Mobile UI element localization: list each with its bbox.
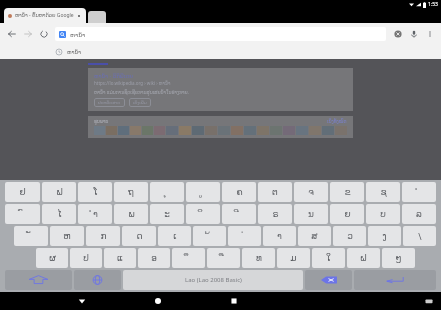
button[interactable]: ຫານ້ຳ [0,45,441,59]
button[interactable]: \ [403,226,436,246]
button[interactable]: Clear [390,26,406,42]
button[interactable]: ຍ [330,204,364,224]
staticText: ໂ [93,187,98,197]
button[interactable]: ່ [228,226,261,246]
button[interactable] [88,11,106,23]
button[interactable]: ຢ [5,182,40,202]
button[interactable]: ໃ [312,248,345,268]
staticText: ຫ [63,231,71,241]
staticText: Lao (Lao 2008 Basic) [185,276,242,284]
button[interactable]: Back [4,26,20,42]
button[interactable]: Backspace [305,270,352,290]
staticText: 1:53 [428,1,438,8]
button[interactable]: ູ [186,182,220,202]
button[interactable]: ປ [70,248,102,268]
button[interactable]: ຫານ້ຳ - ວິກິພີເດຍ [94,72,347,107]
button[interactable]: Shift [5,270,72,290]
button[interactable]: ໂ [78,182,112,202]
button[interactable]: ຝ [347,248,380,268]
button[interactable]: ໄ [42,204,76,224]
button[interactable]: Change keyboard [74,270,121,290]
button[interactable]: ຟ [42,182,76,202]
button[interactable]: ບ [366,204,400,224]
button[interactable]: Enter [354,270,436,290]
button[interactable]: Home [150,293,166,309]
button[interactable]: Lao (Lao 2008 Basic) [123,270,303,290]
button[interactable]: ກ [86,226,120,246]
button[interactable]: ຊ [366,182,400,202]
button[interactable]: Keyboard [421,293,437,309]
button[interactable]: Forward [20,26,36,42]
button[interactable]: ຈ [294,182,328,202]
button[interactable]: Back [74,293,90,309]
button[interactable]: ເບິ່ງເພີ່ມ [133,100,147,105]
button[interactable]: ລ [402,204,436,224]
button[interactable]: ງ [368,226,401,246]
button[interactable]: Close tab [76,13,82,19]
button[interactable]: ຸ [150,182,184,202]
button[interactable]: Reload [36,26,52,42]
button[interactable]: ະ [150,204,184,224]
button[interactable]: ຄ [222,182,256,202]
button[interactable]: ຂ [330,182,364,202]
button[interactable]: ຫ [50,226,84,246]
button[interactable]: ມ [277,248,310,268]
button[interactable]: Voice search [406,26,422,42]
staticText: ປ [83,253,89,263]
button[interactable]: ເ [158,226,191,246]
button[interactable]: ດ [122,226,156,246]
button[interactable]: ປະຫວັດສາດ [98,100,121,105]
button[interactable]: ຕ [258,182,292,202]
button[interactable]: ສ [298,226,331,246]
button[interactable]: ນ [294,204,328,224]
button[interactable]: ຜ [36,248,68,268]
staticText: ກ [100,231,107,241]
button[interactable]: ີ [222,204,256,224]
staticText: ະ [164,209,170,219]
button[interactable]: Recents [226,293,242,309]
button[interactable]: ໍ [402,182,436,202]
button[interactable]: ຳ [78,204,112,224]
button[interactable]: ແ [104,248,136,268]
button[interactable]: ໆ [382,248,415,268]
button[interactable]: ວ [333,226,366,246]
button[interactable]: More options [422,26,438,42]
button[interactable]: ຫານ້ຳ - ຄົ້ນຫາດ້ວຍ Google [4,8,86,23]
button[interactable]: ເບິ່ງທັງໝົດ [327,119,347,124]
button[interactable]: ຶ [172,248,205,268]
staticText: ໃ [326,253,331,263]
button[interactable]: ພ [114,204,148,224]
button[interactable]: ຫານ້ຳ [55,27,386,41]
button[interactable]: ື [207,248,240,268]
button[interactable]: ິ [186,204,220,224]
button[interactable]: ົ [5,204,40,224]
button[interactable]: ຖ [114,182,148,202]
button[interactable]: າ [263,226,296,246]
button[interactable]: ້ [193,226,226,246]
button[interactable]: ອ [138,248,170,268]
staticText: ຕ [272,187,278,197]
button[interactable]: ທ [242,248,275,268]
button[interactable]: ຣ [258,204,292,224]
button[interactable]: ັ [14,226,48,246]
